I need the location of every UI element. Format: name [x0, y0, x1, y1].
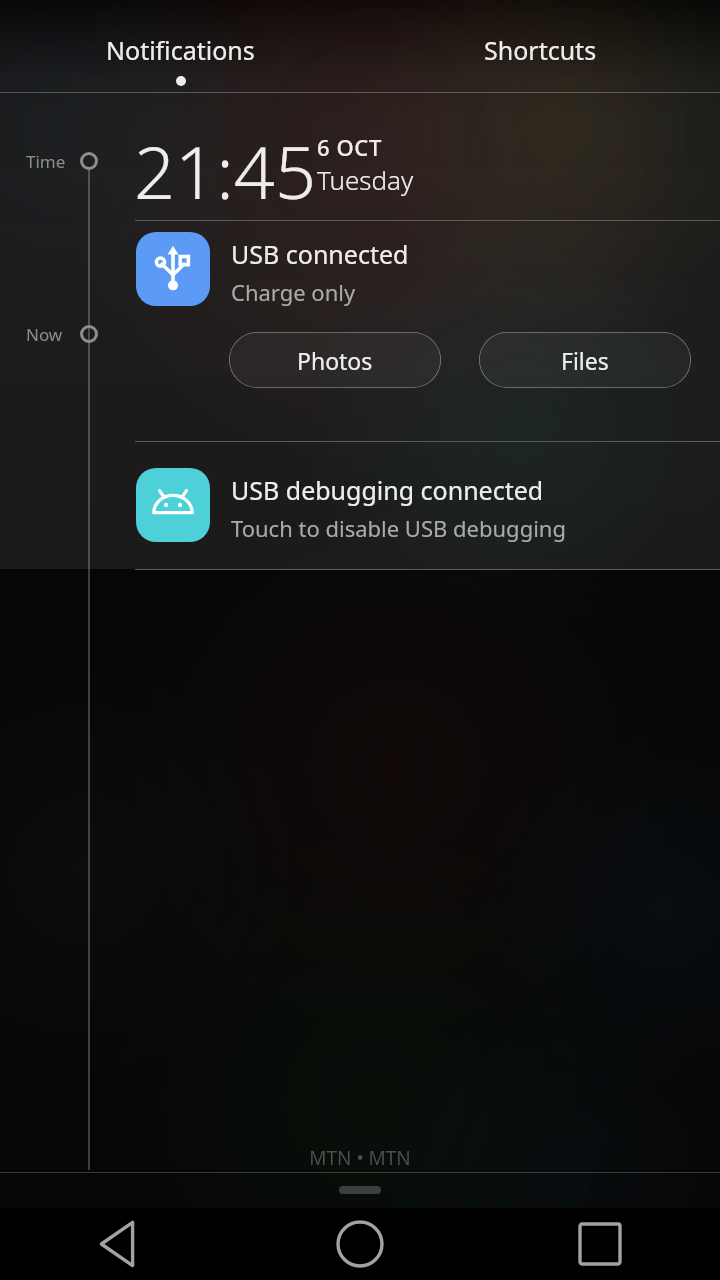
button[interactable]: Home	[240, 1208, 480, 1280]
staticText: Files	[561, 345, 609, 376]
staticText: Notifications	[106, 33, 255, 67]
button[interactable]: USB connected	[136, 232, 720, 307]
button[interactable]: Photos	[229, 332, 441, 388]
staticText: 21:45	[134, 122, 317, 220]
button[interactable]: Files	[479, 332, 691, 388]
staticText: Shortcuts	[484, 33, 597, 67]
button[interactable]: Notifications	[0, 0, 360, 92]
button[interactable]: Recents	[480, 1208, 720, 1280]
staticText: USB debugging connected	[231, 473, 544, 507]
staticText: Now	[26, 323, 63, 346]
staticText: Charge only	[231, 277, 356, 307]
button[interactable]: Shortcuts	[360, 0, 720, 92]
staticText: Touch to disable USB debugging	[231, 513, 566, 543]
button[interactable]: USB debugging connected	[136, 468, 720, 543]
staticText: 6 OCT	[317, 132, 382, 162]
staticText: USB connected	[231, 237, 409, 271]
staticText: Tuesday	[317, 162, 414, 197]
staticText: Time	[26, 150, 66, 173]
staticText: MTN • MTN	[0, 1145, 720, 1171]
button[interactable]: Back	[0, 1208, 240, 1280]
staticText: Photos	[297, 345, 373, 376]
